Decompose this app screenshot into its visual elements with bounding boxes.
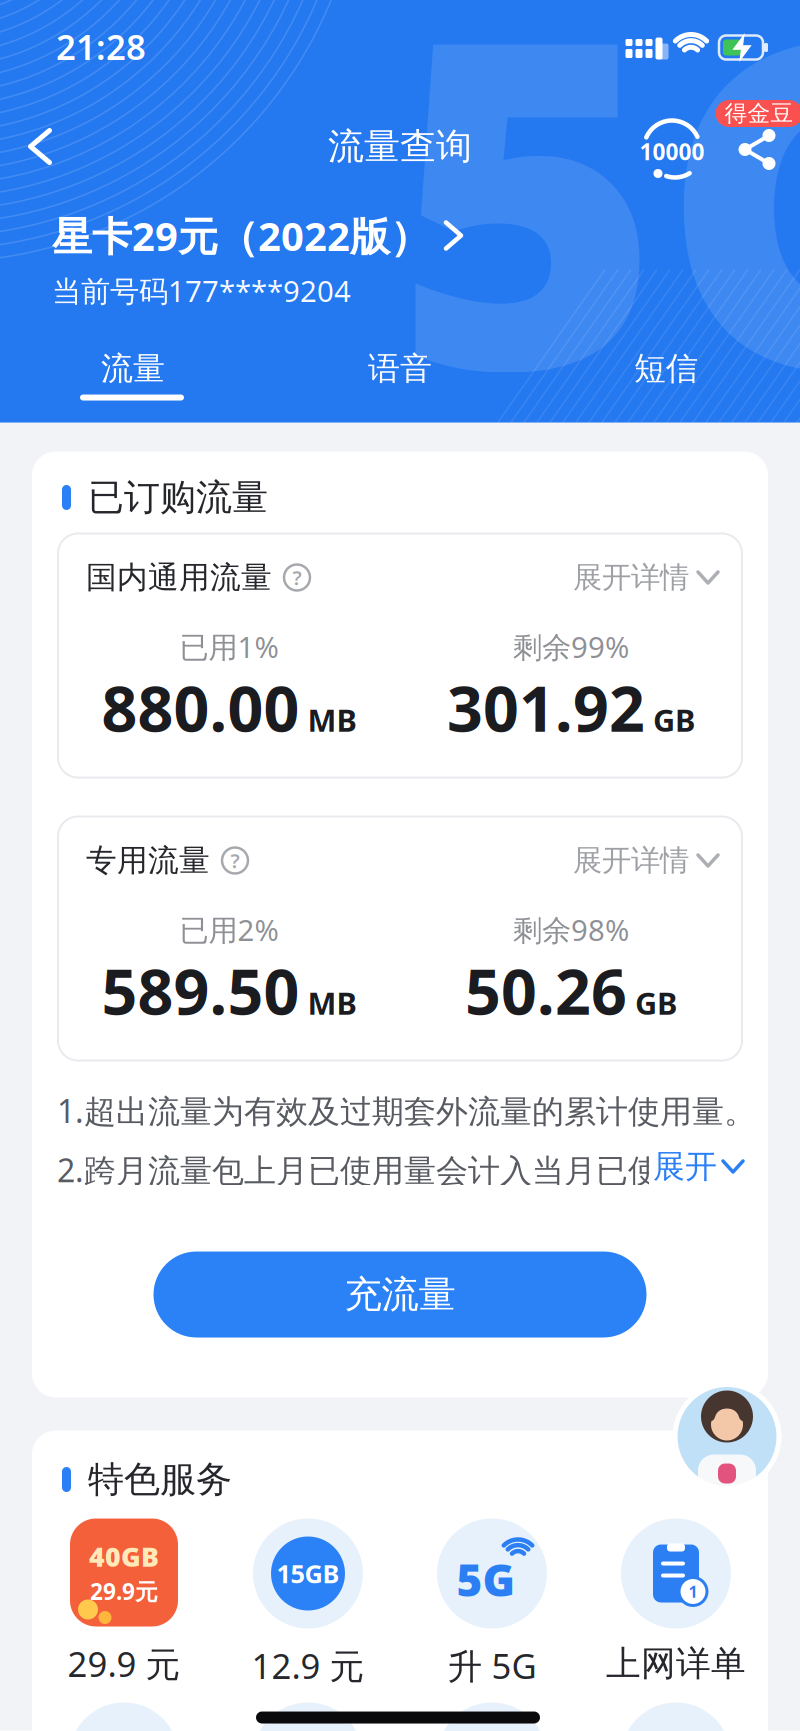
staticText: 50.26 xyxy=(465,949,627,1032)
staticText: MB xyxy=(307,983,356,1023)
button[interactable]: 1 xyxy=(606,1518,746,1685)
button[interactable]: 40GB xyxy=(67,1518,180,1686)
button[interactable]: 5G xyxy=(437,1518,547,1688)
button[interactable]: 短信 xyxy=(622,341,710,396)
staticText: 特色服务 xyxy=(88,1457,232,1502)
staticText: 10000 xyxy=(639,136,704,166)
staticText: 589.50 xyxy=(101,949,299,1032)
button[interactable]: 返回 xyxy=(22,122,57,170)
staticText: 星卡29元（2022版） xyxy=(52,209,430,262)
staticText: 语音 xyxy=(368,349,432,388)
staticText: 301.92 xyxy=(447,666,645,749)
staticText: MB xyxy=(307,700,356,740)
button[interactable]: 15GB xyxy=(251,1518,364,1688)
button[interactable]: 语音 xyxy=(356,341,444,396)
staticText: 1.超出流量为有效及过期套外流量的累计使用量。 xyxy=(57,1089,756,1132)
button[interactable]: 展开 xyxy=(649,1147,743,1186)
staticText: 展开详情 xyxy=(573,842,689,878)
staticText: 5G xyxy=(456,1550,515,1609)
staticText: 得金豆 xyxy=(724,100,793,127)
staticText: 当前号码177****9204 xyxy=(52,271,351,310)
staticText: 5G xyxy=(394,0,800,492)
staticText: 已用2% xyxy=(179,910,278,949)
staticText: 15GB xyxy=(276,1557,339,1590)
button[interactable]: 充流量 xyxy=(153,1251,646,1337)
staticText: 12.9 元 xyxy=(251,1642,364,1688)
staticText: 1 xyxy=(688,1581,697,1602)
staticText: 上网详单 xyxy=(606,1642,746,1685)
staticText: 880.00 xyxy=(101,666,299,749)
button[interactable]: 展开详情 xyxy=(573,842,718,878)
staticText: 国内通用流量 xyxy=(86,559,272,596)
button[interactable]: 分享得金豆 xyxy=(713,128,800,170)
staticText: 展开详情 xyxy=(573,559,689,595)
button[interactable]: 在线客服 xyxy=(675,1384,779,1488)
staticText: GB xyxy=(653,700,695,740)
staticText: 短信 xyxy=(634,349,698,388)
staticText: 剩余98% xyxy=(513,910,629,949)
staticText: 流量 xyxy=(101,349,165,388)
staticText: 已订购流量 xyxy=(88,475,268,520)
staticText: ? xyxy=(230,847,239,874)
button[interactable]: 星卡29元（2022版） xyxy=(52,209,461,262)
staticText: 专用流量 xyxy=(86,842,210,879)
staticText: 29.9 元 xyxy=(67,1640,180,1686)
staticText: 2.跨月流量包上月已使用量会计入当月已使用量会计 xyxy=(57,1148,660,1230)
button[interactable]: 10000号客服 xyxy=(632,116,712,180)
staticText: 21:28 xyxy=(56,23,146,69)
staticText: GB xyxy=(635,983,677,1023)
staticText: 流量查询 xyxy=(328,124,472,169)
staticText: 充流量 xyxy=(344,1272,455,1317)
staticText: 已用1% xyxy=(179,627,278,666)
staticText: 剩余99% xyxy=(513,627,629,666)
staticText: 29.9元 xyxy=(90,1576,158,1606)
staticText: 40GB xyxy=(89,1539,159,1574)
staticText: ? xyxy=(292,564,301,591)
staticText: 升 5G xyxy=(447,1642,536,1688)
staticText: 展开 xyxy=(653,1147,717,1186)
button[interactable]: 流量 xyxy=(89,341,177,396)
button[interactable]: 展开详情 xyxy=(573,559,718,595)
